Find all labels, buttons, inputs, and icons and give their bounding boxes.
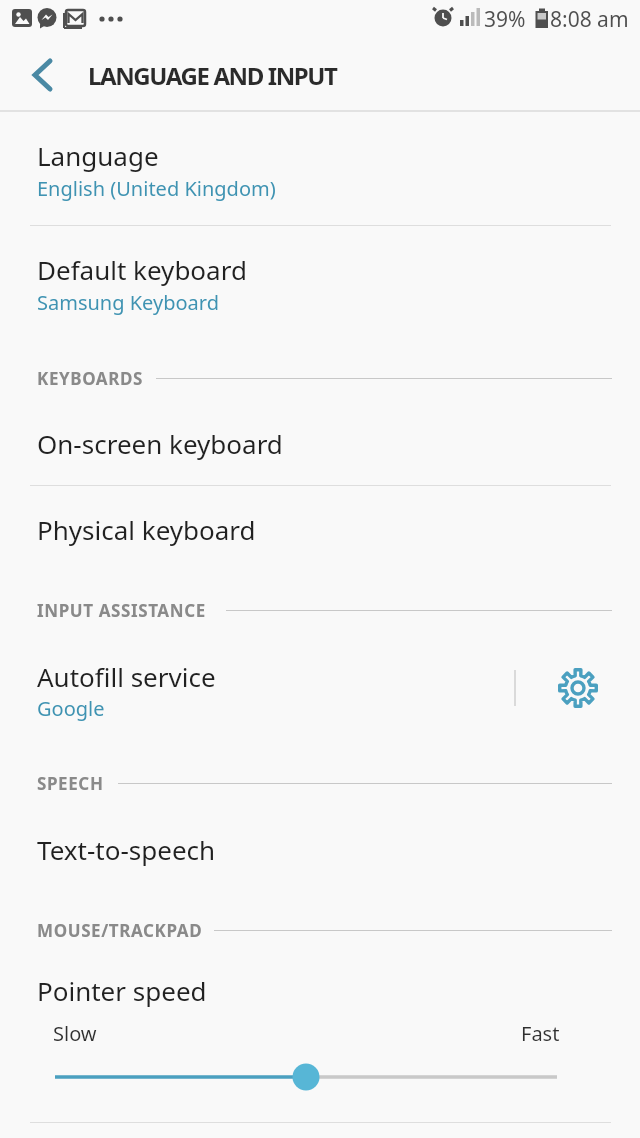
- staticText: INPUT ASSISTANCE: [37, 599, 206, 622]
- staticText: SPEECH: [37, 772, 104, 795]
- staticText: Google: [37, 695, 105, 722]
- button[interactable]: [0, 952, 640, 1102]
- staticText: Autofill service: [37, 659, 216, 694]
- staticText: Fast: [521, 1020, 560, 1047]
- staticText: Slow: [53, 1020, 97, 1047]
- staticText: Language: [37, 138, 159, 173]
- staticText: Text-to-speech: [37, 832, 216, 867]
- staticText: Default keyboard: [37, 252, 247, 287]
- staticText: Physical keyboard: [37, 512, 256, 547]
- button[interactable]: [557, 667, 599, 709]
- staticText: English (United Kingdom): [37, 175, 276, 202]
- staticText: KEYBOARDS: [37, 367, 143, 390]
- button[interactable]: [0, 112, 640, 225]
- button[interactable]: [26, 55, 58, 95]
- staticText: MOUSE/TRACKPAD: [37, 919, 203, 942]
- staticText: On-screen keyboard: [37, 426, 283, 461]
- button[interactable]: [0, 400, 640, 485]
- staticText: LANGUAGE AND INPUT: [88, 59, 337, 92]
- button[interactable]: [0, 806, 640, 891]
- staticText: 8:08 am: [550, 5, 629, 34]
- button[interactable]: [0, 226, 640, 340]
- staticText: Pointer speed: [37, 973, 207, 1008]
- staticText: 39%: [484, 5, 526, 34]
- button[interactable]: [0, 634, 500, 746]
- staticText: Samsung Keyboard: [37, 289, 219, 316]
- button[interactable]: [0, 486, 640, 571]
- button[interactable]: [0, 1050, 640, 1104]
